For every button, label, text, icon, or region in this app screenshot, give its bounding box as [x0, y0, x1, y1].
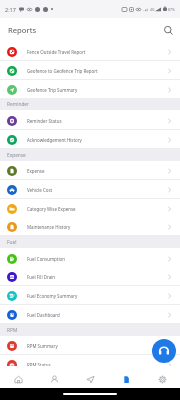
- button[interactable]: Category Wise Expense: [0, 199, 180, 218]
- button[interactable]: Reports: [108, 366, 144, 388]
- staticText: Acknowledgement History: [27, 137, 82, 143]
- staticText: Expense: [27, 168, 45, 174]
- button[interactable]: Track: [72, 366, 108, 388]
- staticText: Fuel Fill Drain: [27, 274, 56, 280]
- button[interactable]: Home: [0, 366, 36, 388]
- staticText: 2:17: [5, 6, 16, 13]
- staticText: Maintenance History: [27, 224, 71, 230]
- staticText: Reports: [8, 25, 37, 35]
- button[interactable]: Profile: [36, 366, 72, 388]
- staticText: RPM Summary: [27, 343, 58, 349]
- button[interactable]: Geofence Trip Summary: [0, 80, 180, 99]
- button[interactable]: Fuel Economy Summary: [0, 286, 180, 305]
- button[interactable]: Geofence to Geofence Trip Report: [0, 61, 180, 80]
- staticText: 87%: [168, 7, 175, 12]
- button[interactable]: Support chat: [152, 339, 176, 363]
- staticText: RPM: [7, 327, 18, 334]
- staticText: Reminder Status: [27, 118, 62, 124]
- button[interactable]: Fuel Dashboard: [0, 305, 180, 324]
- staticText: Reminder: [7, 101, 30, 108]
- staticText: Fuel: [7, 239, 17, 246]
- staticText: 4G: [150, 7, 155, 12]
- button[interactable]: Search: [159, 21, 177, 39]
- button[interactable]: Fuel Consumption: [0, 249, 180, 268]
- button[interactable]: Acknowledgement History: [0, 130, 180, 149]
- staticText: Fuel Consumption: [27, 256, 65, 262]
- staticText: Fuel Dashboard: [27, 312, 60, 318]
- staticText: Expense: [7, 152, 26, 159]
- button[interactable]: RPM Status: [0, 355, 180, 366]
- button[interactable]: Reminder Status: [0, 111, 180, 130]
- button[interactable]: Settings: [144, 366, 180, 388]
- staticText: Fuel Economy Summary: [27, 293, 78, 299]
- staticText: RPM Status: [27, 362, 51, 366]
- button[interactable]: RPM Summary: [0, 336, 180, 355]
- staticText: Vehicle Cost: [27, 187, 53, 193]
- staticText: Fence Outside Travel Report: [27, 49, 86, 55]
- staticText: Geofence to Geofence Trip Report: [27, 68, 98, 74]
- button[interactable]: Vehicle Cost: [0, 180, 180, 199]
- staticText: Geofence Trip Summary: [27, 87, 78, 93]
- button[interactable]: Expense: [0, 161, 180, 180]
- button[interactable]: Fuel Fill Drain: [0, 267, 180, 286]
- button[interactable]: Maintenance History: [0, 217, 180, 236]
- button[interactable]: Fence Outside Travel Report: [0, 42, 180, 61]
- staticText: Category Wise Expense: [27, 206, 76, 212]
